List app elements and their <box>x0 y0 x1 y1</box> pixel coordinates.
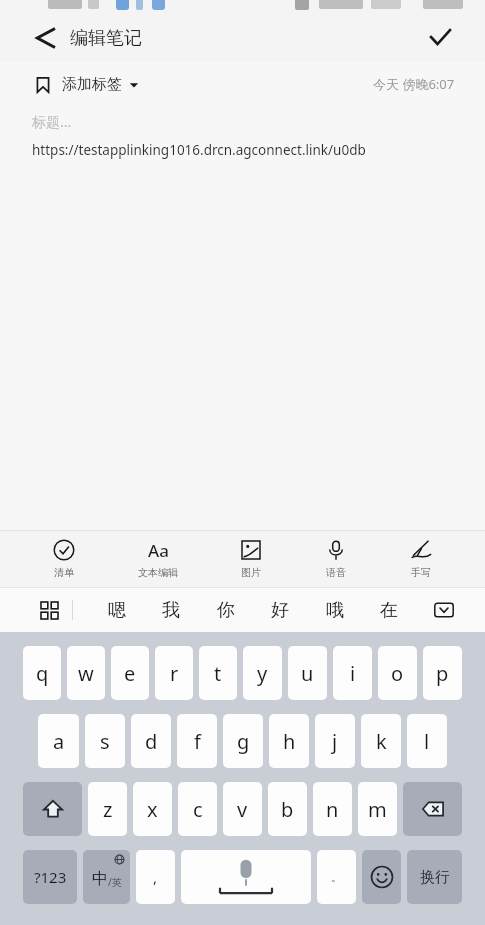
staticText: l <box>424 728 430 755</box>
button[interactable]: k <box>361 714 401 768</box>
staticText: n <box>326 796 339 823</box>
button[interactable]: Space <box>181 850 311 904</box>
staticText: 手写 <box>411 566 431 579</box>
button[interactable]: , <box>136 850 175 904</box>
button[interactable]: d <box>131 714 171 768</box>
button[interactable]: Shift <box>23 782 82 836</box>
button[interactable]: i <box>333 646 372 700</box>
staticText: 文本编辑 <box>138 566 178 579</box>
staticText: 在 <box>380 599 398 622</box>
button[interactable]: 语音 <box>315 535 357 583</box>
staticText: m <box>368 796 387 823</box>
staticText: w <box>78 660 94 687</box>
button[interactable]: 手写 <box>400 535 442 583</box>
button[interactable]: 好 <box>263 595 297 626</box>
staticText: u <box>301 660 314 687</box>
button[interactable]: b <box>268 782 307 836</box>
staticText: x <box>147 796 158 823</box>
button[interactable]: s <box>85 714 125 768</box>
button[interactable]: Keyboard menu <box>34 595 64 625</box>
button[interactable]: 你 <box>209 595 243 626</box>
staticText: o <box>391 660 404 687</box>
staticText: , <box>153 867 158 887</box>
staticText: f <box>194 728 201 755</box>
button[interactable]: 在 <box>372 595 406 626</box>
staticText: 标题... <box>32 112 72 131</box>
button[interactable]: Backspace <box>403 782 462 836</box>
staticText: p <box>436 660 449 687</box>
button[interactable]: t <box>199 646 237 700</box>
staticText: 语音 <box>326 566 346 579</box>
button[interactable]: y <box>243 646 282 700</box>
staticText: i <box>350 660 356 687</box>
button[interactable]: m <box>358 782 397 836</box>
button[interactable]: e <box>111 646 149 700</box>
button[interactable]: Switch language <box>83 850 130 904</box>
button[interactable]: 添加标签 <box>30 71 143 98</box>
staticText: 今天 傍晚6:07 <box>373 75 455 93</box>
staticText: 我 <box>162 599 180 622</box>
button[interactable]: x <box>133 782 172 836</box>
staticText: 图片 <box>241 566 261 579</box>
staticText: e <box>124 660 136 687</box>
staticText: 换行 <box>420 868 450 887</box>
staticText: 添加标签 <box>62 75 122 94</box>
staticText: q <box>36 660 49 687</box>
button[interactable]: c <box>178 782 217 836</box>
button[interactable]: 清单 <box>43 535 85 583</box>
button[interactable]: Aa <box>128 535 188 583</box>
button[interactable]: ?123 <box>23 850 77 904</box>
button[interactable]: h <box>269 714 309 768</box>
button[interactable]: Expand candidates <box>429 595 459 625</box>
button[interactable]: 嗯 <box>100 595 134 626</box>
button[interactable]: 换行 <box>407 850 462 904</box>
staticText: 好 <box>271 599 289 622</box>
staticText: r <box>170 660 179 687</box>
button[interactable]: 图片 <box>230 535 272 583</box>
button[interactable]: 。 <box>317 850 356 904</box>
staticText: a <box>53 728 65 755</box>
staticText: z <box>103 796 113 823</box>
button[interactable]: o <box>378 646 417 700</box>
staticText: c <box>193 796 203 823</box>
button[interactable]: l <box>407 714 447 768</box>
staticText: 编辑笔记 <box>70 27 142 50</box>
button[interactable]: 哦 <box>318 595 352 626</box>
button[interactable]: v <box>223 782 262 836</box>
button[interactable]: Back <box>28 21 62 55</box>
staticText: y <box>257 660 268 687</box>
button[interactable]: q <box>23 646 61 700</box>
staticText: v <box>237 796 248 823</box>
staticText: t <box>214 660 222 687</box>
staticText: d <box>145 728 158 755</box>
staticText: https://testapplinking1016.drcn.agconnec… <box>32 141 366 159</box>
button[interactable]: u <box>288 646 327 700</box>
staticText: h <box>283 728 296 755</box>
button[interactable]: p <box>423 646 462 700</box>
staticText: g <box>237 728 250 755</box>
button[interactable]: w <box>67 646 105 700</box>
staticText: 哦 <box>326 599 344 622</box>
button[interactable]: r <box>155 646 193 700</box>
staticText: ?123 <box>34 867 67 887</box>
button[interactable]: n <box>313 782 352 836</box>
staticText: 中 <box>92 869 108 889</box>
button[interactable]: f <box>177 714 217 768</box>
button[interactable]: Emoji <box>362 850 401 904</box>
button[interactable]: j <box>315 714 355 768</box>
button[interactable]: g <box>223 714 263 768</box>
staticText: 清单 <box>54 566 74 579</box>
staticText: /英 <box>108 875 122 889</box>
button[interactable]: 我 <box>154 595 188 626</box>
button[interactable]: a <box>38 714 79 768</box>
staticText: 嗯 <box>108 599 126 622</box>
staticText: k <box>376 728 387 755</box>
staticText: 。 <box>331 870 342 884</box>
button[interactable]: Save note <box>423 21 457 55</box>
button[interactable]: z <box>88 782 127 836</box>
staticText: b <box>281 796 294 823</box>
staticText: s <box>100 728 110 755</box>
staticText: j <box>332 728 338 755</box>
staticText: Aa <box>148 539 169 561</box>
staticText: 你 <box>217 599 235 622</box>
